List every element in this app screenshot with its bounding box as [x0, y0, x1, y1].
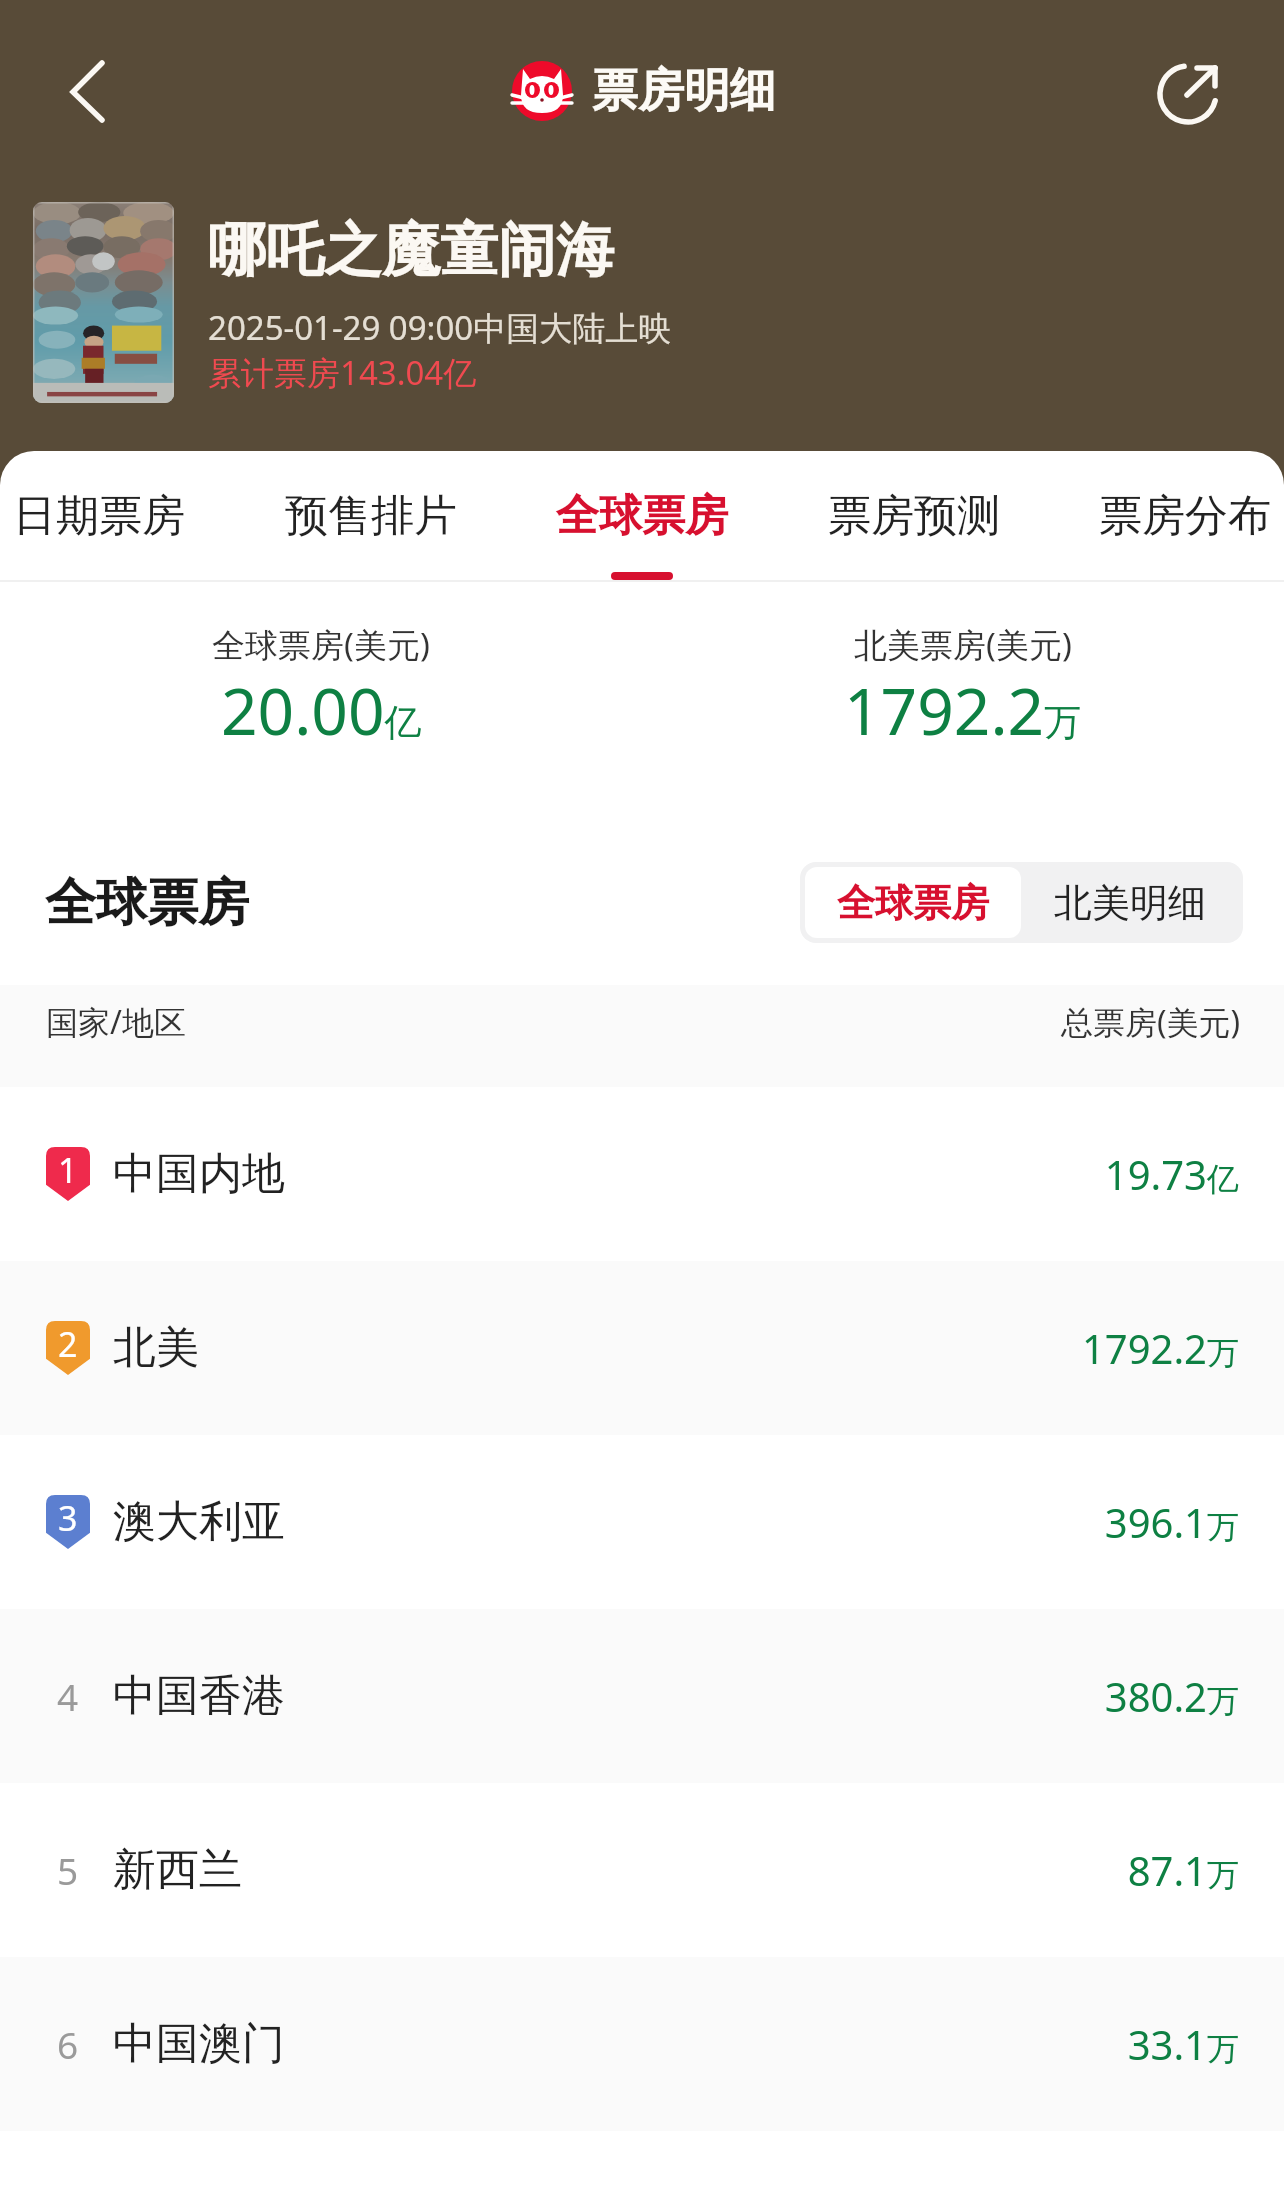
button[interactable]: 全球票房	[805, 867, 1021, 938]
button[interactable]: 3	[0, 1435, 1284, 1609]
staticText: 哪吒之魔童闹海	[208, 214, 614, 287]
button[interactable]: 日期票房	[13, 451, 185, 580]
staticText: 北美	[113, 1321, 199, 1375]
staticText: 总票房(美元)	[1061, 1000, 1241, 1044]
staticText: 中国澳门	[113, 2017, 285, 2071]
button[interactable]: 票房分布	[1099, 451, 1271, 580]
staticText: 1	[58, 1147, 78, 1193]
button[interactable]: 5	[0, 1783, 1284, 1957]
button[interactable]: 1	[0, 1087, 1284, 1261]
staticText: 国家/地区	[46, 1000, 186, 1044]
staticText: 票房预测	[828, 489, 1000, 543]
staticText: 澳大利亚	[113, 1495, 285, 1549]
staticText: 2	[58, 1321, 78, 1367]
staticText: 87.1万	[1127, 1843, 1239, 1897]
staticText: 北美明细	[1054, 879, 1206, 927]
staticText: 1792.2万	[1081, 1321, 1239, 1375]
staticText: 4	[57, 1671, 79, 1721]
staticText: 20.00亿	[221, 667, 422, 754]
button[interactable]: 票房明细	[508, 57, 776, 125]
button[interactable]: 预售排片	[285, 451, 457, 580]
staticText: 票房分布	[1099, 489, 1271, 543]
staticText: 全球票房	[837, 879, 989, 927]
staticText: 全球票房(美元)	[212, 622, 430, 667]
staticText: 5	[57, 1845, 79, 1895]
staticText: 中国内地	[113, 1147, 285, 1201]
button[interactable]: 2	[0, 1261, 1284, 1435]
staticText: 新西兰	[113, 1843, 242, 1897]
staticText: 票房明细	[592, 62, 776, 120]
staticText: 累计票房143.04亿	[208, 350, 477, 395]
staticText: 预售排片	[285, 489, 457, 543]
staticText: 全球票房	[556, 489, 728, 543]
staticText: 全球票房	[45, 871, 249, 935]
button[interactable]: 4	[0, 1609, 1284, 1783]
staticText: 2025-01-29 09:00中国大陆上映	[208, 305, 672, 350]
button[interactable]: 票房预测	[828, 451, 1000, 580]
staticText: 1792.2万	[844, 667, 1082, 754]
button[interactable]: 6	[0, 1957, 1284, 2131]
staticText: 380.2万	[1104, 1669, 1239, 1723]
button[interactable]: 全球票房	[556, 451, 728, 580]
staticText: 日期票房	[13, 489, 185, 543]
staticText: 6	[57, 2019, 79, 2069]
button[interactable]: 返回	[40, 44, 135, 139]
staticText: 3	[58, 1495, 78, 1541]
staticText: 北美票房(美元)	[854, 622, 1072, 667]
button[interactable]: 北美明细	[1021, 867, 1238, 938]
staticText: 中国香港	[113, 1669, 285, 1723]
staticText: 33.1万	[1127, 2017, 1239, 2071]
button[interactable]: 分享	[1140, 46, 1236, 142]
staticText: 19.73亿	[1104, 1147, 1239, 1201]
staticText: 396.1万	[1104, 1495, 1239, 1549]
